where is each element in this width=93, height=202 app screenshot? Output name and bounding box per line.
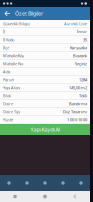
staticText: Ayrıntılı Liste [64,21,87,26]
button[interactable]: Tool [72,175,90,191]
staticText: Karşıyaka [70,45,87,50]
staticText: Mahalle/Köy [3,53,24,58]
staticText: Yapı Alanı [3,85,20,90]
staticText: Bandırma [69,101,87,106]
staticText: 1 00 0 10 00 [67,117,87,122]
staticText: Güvenlik Bilgisi [3,21,30,26]
staticText: Tekli [79,93,87,98]
button[interactable]: Tool [0,175,18,191]
staticText: Yüzde [3,117,13,122]
staticText: İlçe [3,45,9,50]
button[interactable]: Back [0,7,15,20]
staticText: Seçiniz [75,61,87,66]
staticText: Blok [3,93,11,98]
staticText: 1284 [79,77,87,82]
staticText: 145,00 m2 [69,85,87,90]
staticText: 35 [83,37,87,42]
staticText: Mahalle No [3,61,23,66]
button[interactable]: Tool [54,175,72,191]
staticText: Yapı Kaydı Al [30,126,59,133]
staticText: Düz Tasarımı [63,109,87,114]
staticText: İl Kodu [3,37,14,42]
staticText: Özet Bilgiler [15,10,43,17]
staticText: Parsel [3,77,14,82]
staticText: İzmir [77,29,87,34]
button[interactable]: Tool [36,175,54,191]
staticText: İl [3,29,5,34]
button[interactable]: Recents [0,191,30,202]
button[interactable]: Tool [18,175,36,191]
staticText: Daire [3,101,13,106]
button[interactable]: Back [60,191,90,202]
button[interactable]: Home [30,191,60,202]
button[interactable]: Yapı Kaydı Al [0,124,90,135]
staticText: Ada [3,69,10,74]
staticText: Daire Tipi [3,109,20,114]
staticText: Bostanlı [73,53,87,58]
